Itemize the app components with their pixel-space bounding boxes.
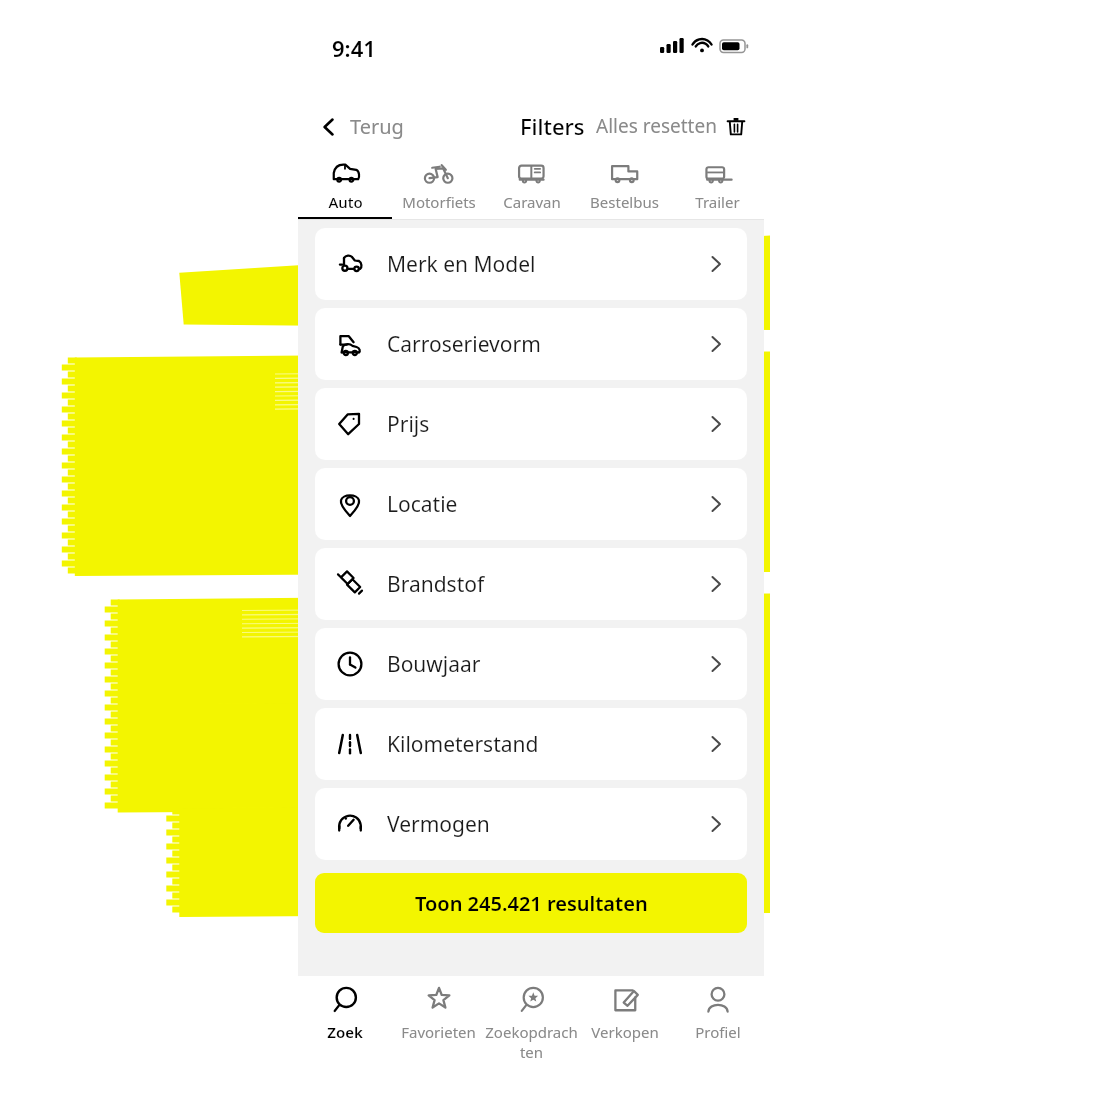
staticText: Kilometerstand [387, 730, 539, 759]
button[interactable]: Favorieten [392, 984, 485, 1100]
button[interactable]: Alles resetten [590, 109, 752, 143]
button[interactable]: Prijs [315, 388, 747, 460]
staticText: Terug [350, 113, 404, 140]
other: Alles resetten [726, 116, 746, 136]
button[interactable]: Zoek [298, 984, 392, 1100]
staticText: Zoekopdrachten [485, 1022, 578, 1062]
staticText: Merk en Model [387, 250, 536, 279]
staticText: Favorieten [401, 1022, 476, 1042]
button[interactable]: Motorfiets [392, 152, 485, 220]
staticText: Motorfiets [402, 192, 476, 212]
button[interactable]: Auto [298, 152, 392, 220]
button[interactable]: Verkopen [578, 984, 671, 1100]
staticText: Auto [328, 192, 363, 212]
button[interactable]: Locatie [315, 468, 747, 540]
staticText: Brandstof [387, 570, 485, 599]
button[interactable]: Terug [312, 109, 410, 144]
staticText: Caravan [503, 192, 561, 212]
staticText: Bestelbus [590, 192, 659, 212]
staticText: Zoek [327, 1022, 363, 1042]
staticText: Bouwjaar [387, 650, 481, 679]
button[interactable]: Merk en Model [315, 228, 747, 300]
staticText: 9:41 [332, 33, 376, 63]
staticText: Toon 245.421 resultaten [415, 890, 648, 917]
staticText: Locatie [387, 490, 458, 519]
staticText: Verkopen [591, 1022, 659, 1042]
staticText: Trailer [695, 192, 740, 212]
button[interactable]: Caravan [485, 152, 578, 220]
button[interactable]: Profiel [671, 984, 764, 1100]
button[interactable]: Carroserievorm [315, 308, 747, 380]
staticText: Carroserievorm [387, 330, 541, 359]
button[interactable]: Zoekopdrachten [485, 984, 578, 1100]
button[interactable]: Brandstof [315, 548, 747, 620]
button[interactable]: Kilometerstand [315, 708, 747, 780]
button[interactable]: Vermogen [315, 788, 747, 860]
staticText: Profiel [695, 1022, 741, 1042]
button[interactable]: Bestelbus [578, 152, 671, 220]
staticText: Prijs [387, 410, 430, 439]
button[interactable]: Trailer [671, 152, 764, 220]
staticText: Vermogen [387, 810, 490, 839]
staticText: Filters [520, 111, 585, 141]
staticText: Alles resetten [596, 113, 717, 139]
button[interactable]: Toon 245.421 resultaten [315, 873, 747, 933]
button[interactable]: Bouwjaar [315, 628, 747, 700]
